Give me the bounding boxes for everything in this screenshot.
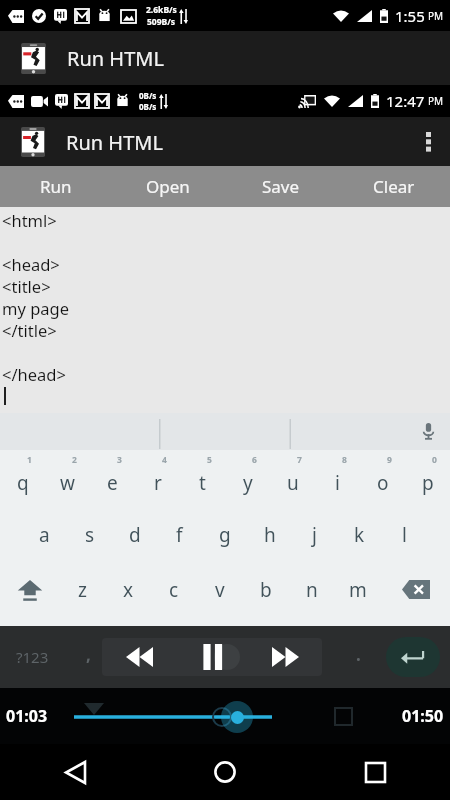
button[interactable]: 1 bbox=[0, 450, 45, 507]
staticText: 509B/s bbox=[147, 16, 176, 28]
staticText: s bbox=[85, 522, 95, 548]
button[interactable]: g bbox=[202, 507, 247, 562]
staticText: g bbox=[219, 522, 231, 548]
button[interactable]: 3 bbox=[90, 450, 135, 507]
button[interactable]: Open bbox=[112, 166, 224, 207]
button[interactable]: Save bbox=[224, 166, 337, 207]
staticText: o bbox=[377, 470, 389, 496]
staticText: h bbox=[264, 522, 276, 548]
button[interactable]: 4 bbox=[135, 450, 180, 507]
staticText: 3 bbox=[117, 454, 122, 466]
button[interactable]: v bbox=[197, 562, 243, 617]
staticText: b bbox=[260, 577, 272, 603]
staticText: i bbox=[335, 470, 340, 496]
staticText: Run HTML bbox=[67, 45, 164, 72]
staticText: d bbox=[129, 522, 141, 548]
staticText: 12:47 bbox=[386, 91, 425, 111]
button[interactable]: h bbox=[247, 507, 292, 562]
button[interactable]: z bbox=[59, 562, 105, 617]
staticText: 0 bbox=[432, 454, 437, 466]
button[interactable]: k bbox=[337, 507, 382, 562]
staticText: 1 bbox=[27, 454, 32, 466]
staticText: <html> bbox=[2, 209, 57, 231]
button[interactable]: c bbox=[151, 562, 197, 617]
staticText: 1:55 bbox=[395, 6, 425, 26]
button[interactable]: Seek bbox=[221, 701, 253, 733]
button[interactable]: Back bbox=[0, 744, 150, 800]
staticText: q bbox=[17, 470, 29, 496]
staticText: Save bbox=[262, 175, 300, 198]
staticText: l bbox=[402, 522, 407, 548]
button[interactable]: f bbox=[157, 507, 202, 562]
staticText: f bbox=[176, 522, 183, 548]
button[interactable]: 7 bbox=[270, 450, 315, 507]
staticText: Open bbox=[146, 175, 190, 198]
staticText: 2.6kB/s bbox=[146, 4, 177, 16]
staticText: z bbox=[78, 577, 87, 603]
button[interactable]: Backspace bbox=[381, 562, 450, 617]
staticText: my page bbox=[2, 297, 69, 319]
staticText: Run bbox=[40, 175, 72, 198]
button[interactable]: a bbox=[22, 507, 67, 562]
button[interactable]: m bbox=[335, 562, 381, 617]
staticText: 5 bbox=[207, 454, 212, 466]
staticText: PM bbox=[428, 9, 444, 23]
button[interactable]: Fast forward bbox=[249, 638, 322, 676]
staticText: j bbox=[312, 522, 317, 548]
staticText: p bbox=[422, 470, 434, 496]
staticText: e bbox=[107, 470, 118, 496]
staticText: 01:50 bbox=[402, 705, 444, 727]
button[interactable]: More options bbox=[406, 117, 450, 166]
button[interactable]: Home bbox=[150, 744, 300, 800]
staticText: , bbox=[86, 643, 91, 666]
button[interactable]: Enter bbox=[386, 637, 440, 677]
staticText: 01:03 bbox=[6, 705, 48, 727]
staticText: 9 bbox=[387, 454, 392, 466]
staticText: k bbox=[354, 522, 365, 548]
staticText: m bbox=[349, 577, 367, 603]
staticText: 4 bbox=[162, 454, 167, 466]
button[interactable]: 2 bbox=[45, 450, 90, 507]
staticText: t bbox=[199, 470, 206, 496]
staticText: <title> bbox=[2, 275, 51, 297]
staticText: v bbox=[215, 577, 225, 603]
staticText: 7 bbox=[297, 454, 302, 466]
button[interactable]: n bbox=[289, 562, 335, 617]
staticText: Run HTML bbox=[66, 129, 163, 156]
staticText: u bbox=[287, 470, 299, 496]
staticText: 8 bbox=[342, 454, 347, 466]
button[interactable]: s bbox=[67, 507, 112, 562]
button[interactable]: 8 bbox=[315, 450, 360, 507]
button[interactable]: b bbox=[243, 562, 289, 617]
staticText: ?123 bbox=[16, 647, 49, 667]
button[interactable]: Voice input bbox=[406, 413, 450, 450]
button[interactable]: Pause bbox=[176, 638, 249, 676]
staticText: c bbox=[169, 577, 179, 603]
staticText: n bbox=[306, 577, 318, 603]
button[interactable]: 9 bbox=[360, 450, 405, 507]
button[interactable]: 5 bbox=[180, 450, 225, 507]
staticText: 2 bbox=[72, 454, 77, 466]
button[interactable]: x bbox=[105, 562, 151, 617]
staticText: 6 bbox=[252, 454, 257, 466]
button[interactable]: Recents bbox=[300, 744, 450, 800]
button[interactable]: 6 bbox=[225, 450, 270, 507]
staticText: <head> bbox=[2, 253, 60, 275]
staticText: 0B/s bbox=[139, 101, 157, 112]
staticText: </head> bbox=[2, 363, 66, 385]
button[interactable]: Clear bbox=[337, 166, 450, 207]
button[interactable]: d bbox=[112, 507, 157, 562]
button[interactable]: l bbox=[382, 507, 427, 562]
staticText: Clear bbox=[373, 175, 415, 198]
staticText: </title> bbox=[2, 319, 57, 341]
button[interactable]: Shift bbox=[0, 562, 59, 617]
button[interactable]: j bbox=[292, 507, 337, 562]
staticText: 0B/s bbox=[139, 90, 157, 101]
button[interactable]: 0 bbox=[405, 450, 450, 507]
button[interactable]: Rewind bbox=[102, 638, 176, 676]
staticText: w bbox=[60, 470, 75, 496]
staticText: a bbox=[39, 522, 50, 548]
button[interactable]: Run bbox=[0, 166, 112, 207]
